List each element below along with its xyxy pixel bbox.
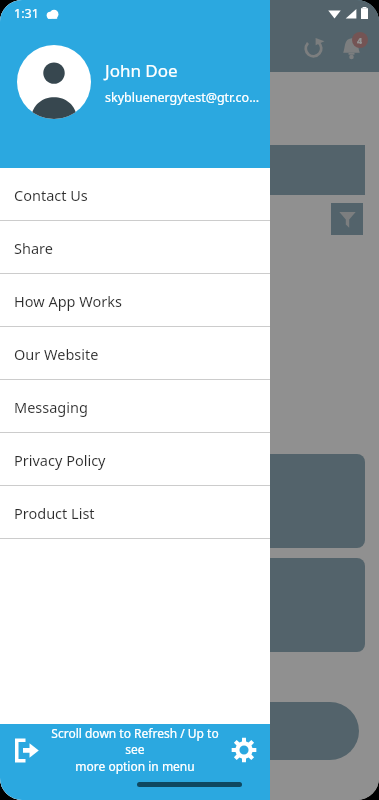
staticText: Messaging [14,397,88,417]
button[interactable]: Refresh [295,30,331,66]
button[interactable]: Messaging [0,380,270,433]
button[interactable]: Privacy Policy [0,433,270,486]
button[interactable]: Filter [331,203,363,235]
button[interactable]: Monitoring [14,558,365,652]
staticText: Privacy Policy [14,450,106,470]
button[interactable]: Profile photo [17,45,91,119]
staticText: Share [14,238,53,258]
staticText: Scroll down to Refresh / Up to see more … [48,725,222,775]
staticText: Product List [14,503,95,523]
staticText: SKY BLUE ENERGY [16,112,186,139]
staticText: skybluenergytest@gtr.co… [105,89,260,106]
button[interactable]: Notifications [331,28,371,68]
button[interactable]: Share [0,221,270,274]
button[interactable]: How App Works [0,274,270,327]
button[interactable]: Our Website [0,327,270,380]
staticText: 1:31 [14,5,39,22]
button[interactable]: Settings [224,730,264,770]
staticText: Our Website [14,344,99,364]
button[interactable]: Product List [0,486,270,539]
staticText: 4 [357,34,363,46]
staticText: Contact Us [14,185,88,205]
button[interactable]: Logout [6,730,46,770]
button[interactable]: Contact Us [0,168,270,221]
button[interactable]: Contact support [20,702,359,760]
staticText: Product B Set (1) [151,428,229,442]
button[interactable]: Logout [0,724,270,776]
staticText: How App Works [14,291,122,311]
staticText: John Doe [105,59,178,82]
button[interactable]: My Wallet [14,454,365,548]
